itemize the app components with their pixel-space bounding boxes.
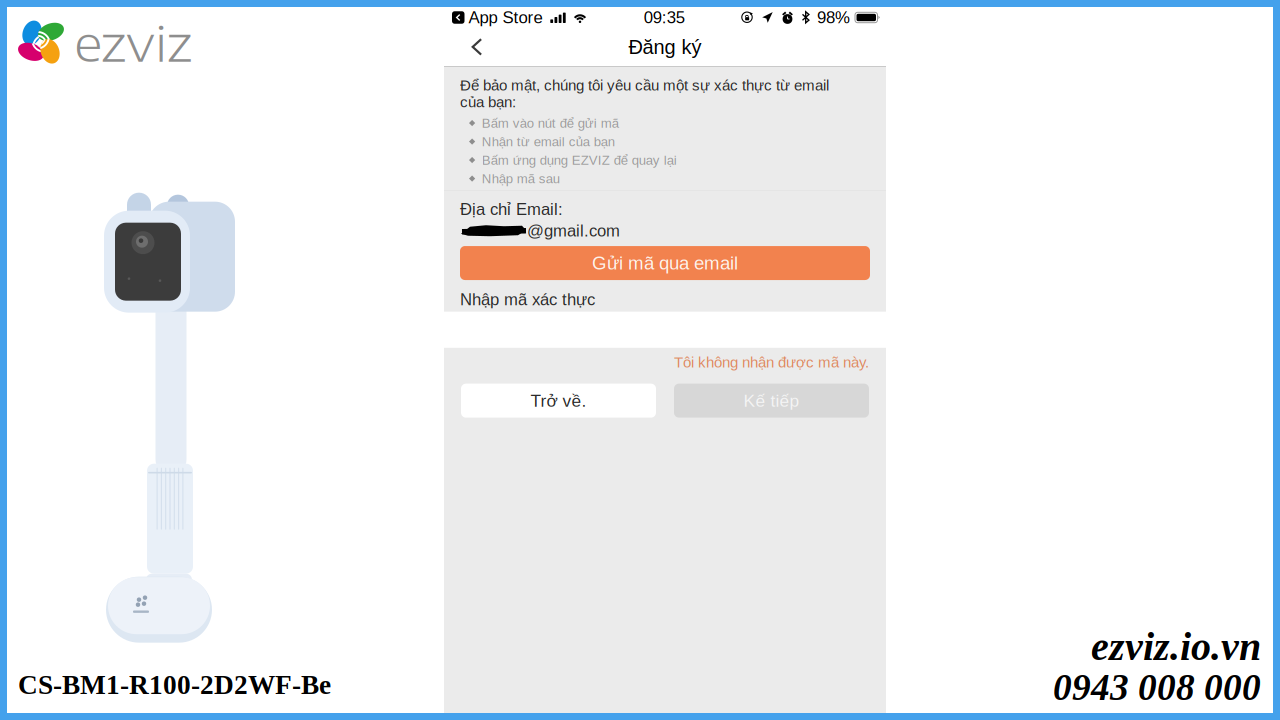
staticText: ezviz [74,11,192,73]
staticText: Đăng ký [628,36,701,58]
staticText: của bạn: [460,94,516,110]
staticText: Gửi mã qua email [592,253,738,273]
staticText: App Store [464,8,542,27]
staticText: 98% [817,8,850,27]
button[interactable]: Kế tiếp [674,384,869,418]
staticText: @gmail.com [527,221,620,240]
button[interactable]: Back [444,28,510,66]
staticText: Để bảo mật, chúng tôi yêu cầu một sự xác… [460,77,829,94]
button[interactable]: Tôi không nhận được mã này. [674,354,869,371]
staticText: Bấm vào nút để gửi mã [482,116,619,130]
staticText: Tôi không nhận được mã này. [674,354,869,371]
staticText: 0943 008 000 [1053,667,1261,708]
staticText: ezviz.io.vn [1091,624,1261,669]
staticText: Kế tiếp [743,391,799,410]
staticText: CS-BM1-R100-2D2WF-Be [18,670,331,700]
staticText: Nhận từ email của bạn [482,134,615,149]
staticText: Địa chỉ Email: [460,200,563,218]
staticText: Nhập mã xác thực [460,290,595,309]
staticText: Trở về. [530,391,586,410]
staticText: Nhập mã sau [482,171,560,186]
staticText: Bấm ứng dụng EZVIZ để quay lại [482,153,677,167]
button[interactable]: Trở về. [461,384,656,418]
button[interactable]: Gửi mã qua email [460,246,870,280]
staticText: 09:35 [644,8,685,27]
